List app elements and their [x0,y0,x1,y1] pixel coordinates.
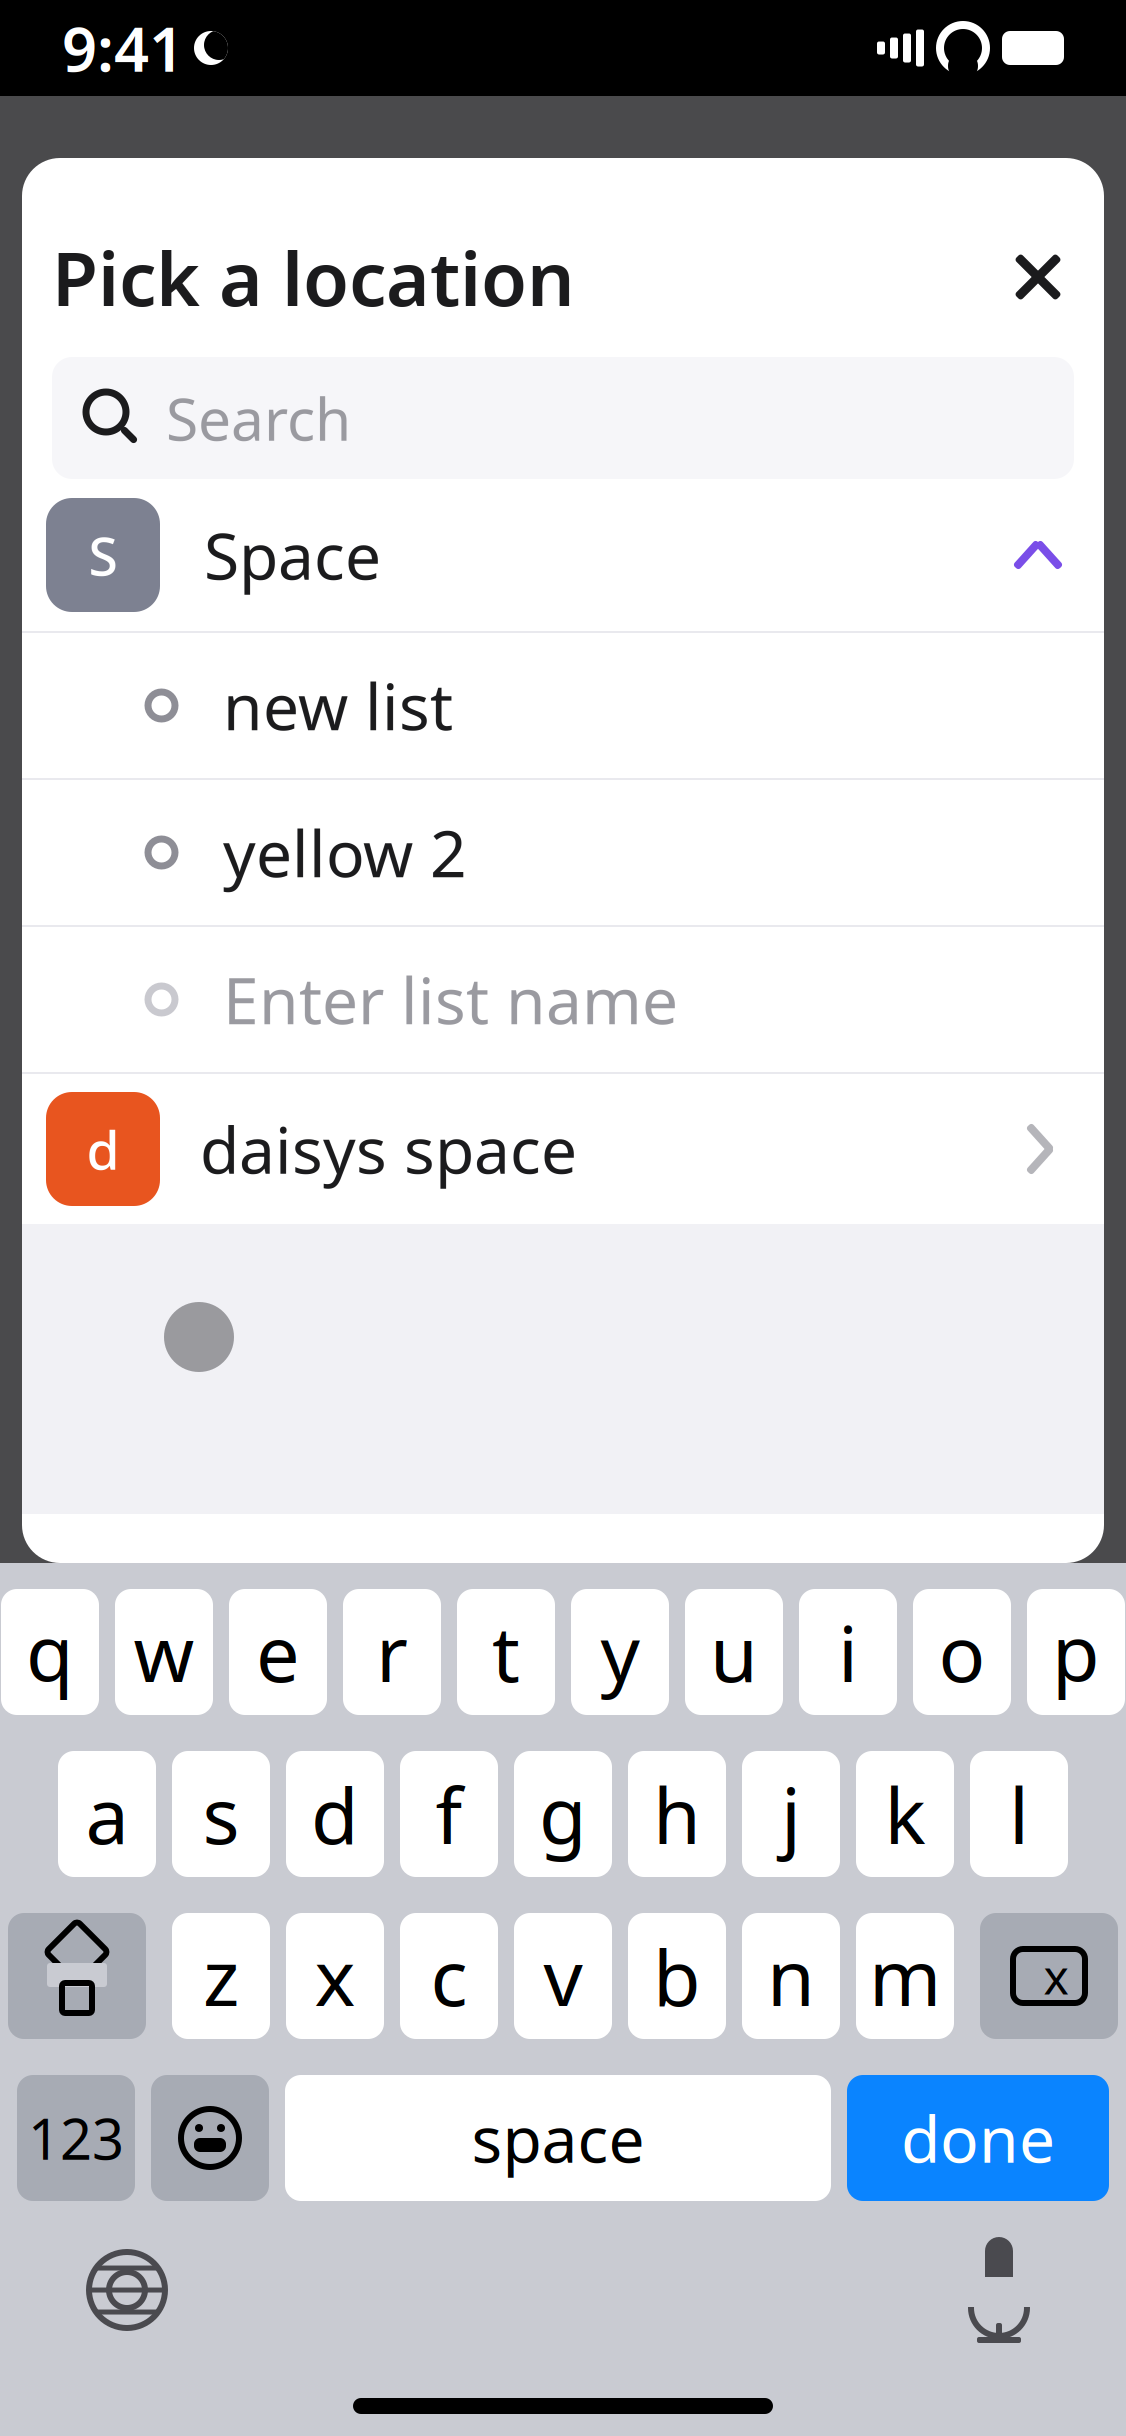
button[interactable]: new list [22,633,1104,778]
button[interactable]: done [847,2075,1109,2201]
staticText: Search [166,379,351,457]
staticText: k [884,1763,925,1865]
staticText: e [256,1601,300,1703]
staticText: S [88,520,117,590]
staticText: x [314,1925,355,2027]
button[interactable]: Close [990,229,1086,325]
button[interactable]: t [457,1589,555,1715]
button[interactable]: w [115,1589,213,1715]
staticText: l [1009,1763,1029,1865]
button[interactable]: a [58,1751,156,1877]
staticText: v [543,1925,582,2027]
staticText: w [133,1601,194,1703]
staticText: h [653,1763,701,1865]
button[interactable]: k [856,1751,954,1877]
button[interactable]: h [628,1751,726,1877]
staticText: Pick a location [52,227,575,327]
button[interactable]: yellow 2 [22,780,1104,925]
button[interactable]: j [742,1751,840,1877]
staticText: Enter list name [223,957,678,1042]
button[interactable]: Shift [8,1913,146,2039]
button[interactable]: d [286,1751,384,1877]
staticText: n [767,1925,815,2027]
staticText: space [471,2095,644,2180]
button[interactable]: Enter list name [22,927,1104,1072]
button[interactable]: space [285,2075,831,2201]
button[interactable]: Search [52,357,1074,479]
button[interactable]: z [172,1913,270,2039]
staticText: f [435,1763,462,1865]
button[interactable]: m [856,1913,954,2039]
staticText: i [838,1601,858,1703]
button[interactable]: g [514,1751,612,1877]
staticText: yellow 2 [223,810,467,895]
staticText: y [600,1601,639,1703]
staticText: new list [223,663,453,748]
staticText: m [869,1925,941,2027]
staticText: d [311,1763,359,1865]
button[interactable]: f [400,1751,498,1877]
button[interactable]: r [343,1589,441,1715]
button[interactable]: o [913,1589,1011,1715]
button[interactable]: u [685,1589,783,1715]
staticText: g [539,1763,587,1865]
staticText: 123 [28,2101,124,2175]
button[interactable]: c [400,1913,498,2039]
staticText: q [26,1601,74,1703]
staticText: done [901,2095,1055,2180]
button[interactable]: b [628,1913,726,2039]
button[interactable]: q [1,1589,99,1715]
button[interactable]: 123 [17,2075,135,2201]
button[interactable]: Emoji [151,2075,269,2201]
staticText: c [430,1925,467,2027]
staticText: a [85,1763,128,1865]
staticText: u [710,1601,758,1703]
staticText: daisys space [200,1106,577,1191]
button[interactable]: p [1027,1589,1125,1715]
button[interactable]: n [742,1913,840,2039]
button[interactable]: Delete [980,1913,1118,2039]
staticText: b [653,1925,701,2027]
staticText: z [203,1925,239,2027]
button[interactable]: s [172,1751,270,1877]
staticText: Space [204,512,381,597]
button[interactable]: e [229,1589,327,1715]
staticText: j [781,1763,801,1865]
staticText: x [1043,1944,1068,2008]
staticText: t [492,1601,520,1703]
button[interactable]: Next keyboard [72,2235,182,2345]
button[interactable]: x [286,1913,384,2039]
staticText: o [938,1601,985,1703]
staticText: s [202,1763,239,1865]
staticText: 9:41 [62,7,184,89]
button[interactable]: v [514,1913,612,2039]
button[interactable]: l [970,1751,1068,1877]
button[interactable]: y [571,1589,669,1715]
staticText: r [376,1601,408,1703]
staticText: d [86,1114,119,1184]
button[interactable]: i [799,1589,897,1715]
button[interactable]: S [22,479,1104,631]
staticText: p [1052,1601,1100,1703]
button[interactable]: d [22,1074,1104,1224]
button[interactable]: Dictate [944,2235,1054,2345]
